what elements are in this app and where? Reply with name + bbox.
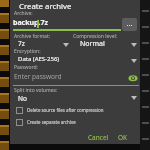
staticText: backup.7z [13,18,48,28]
button[interactable]: OK [114,129,134,143]
staticText: No [18,94,27,103]
button[interactable] [13,93,137,103]
button[interactable] [128,74,138,82]
staticText: Data (AES-256) [18,55,60,63]
staticText: Normal [80,39,105,49]
staticText: Archive format: [14,33,51,40]
staticText: Create separate archive [27,119,76,125]
button[interactable] [13,116,133,127]
staticText: Create archive [19,1,72,12]
staticText: Enter password [14,72,62,81]
staticText: OK [118,133,128,142]
staticText: Encryption: [14,48,41,55]
button[interactable] [13,104,133,115]
button[interactable] [122,18,137,31]
button[interactable]: Cancel [84,129,112,143]
button[interactable] [13,71,125,84]
staticText: Split into volumes: [14,87,58,94]
staticText: Compression level: [73,33,118,40]
button[interactable] [73,39,137,48]
staticText: Password: [14,64,38,71]
button[interactable] [13,39,71,48]
button[interactable] [13,54,137,63]
staticText: Archive: [14,10,33,17]
staticText: Delete source files after compression [27,107,104,113]
staticText: Cancel [88,133,109,142]
staticText: 7z [18,39,25,48]
